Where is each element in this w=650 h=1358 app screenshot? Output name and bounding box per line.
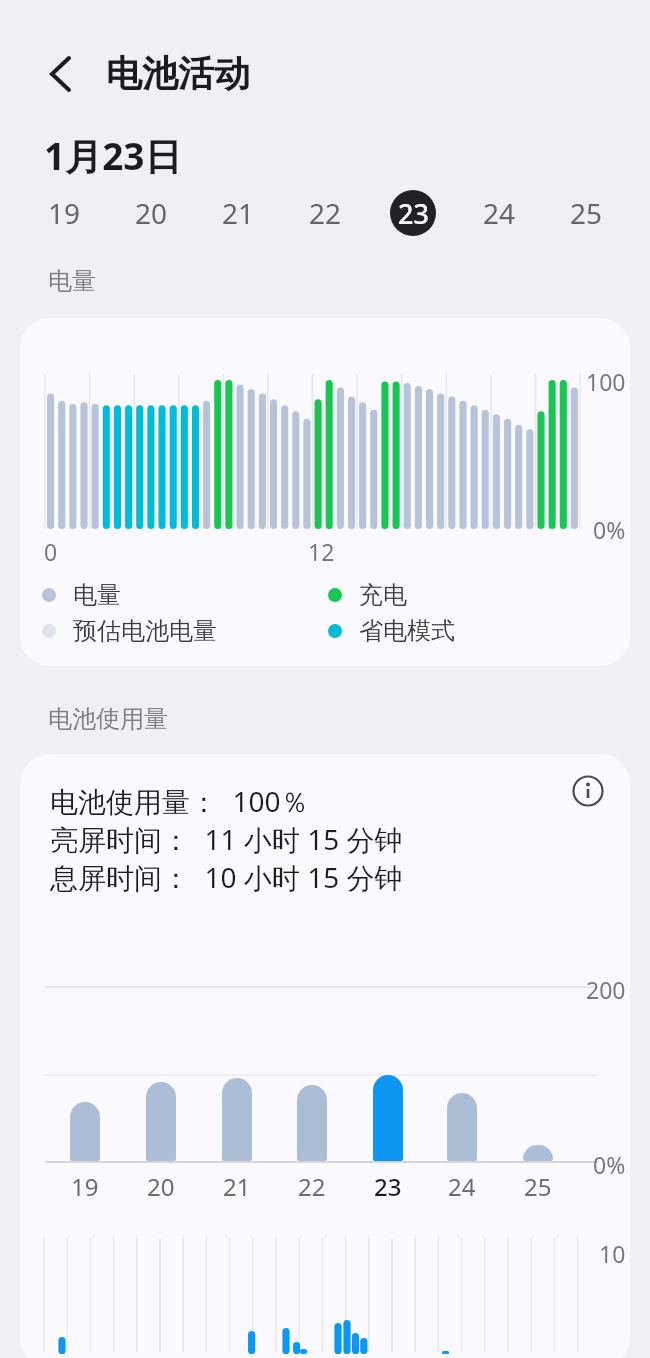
staticText: 0%	[593, 514, 626, 545]
button[interactable]: 21	[195, 188, 282, 238]
staticText: 100	[586, 366, 626, 397]
staticText: 20	[135, 194, 168, 232]
staticText: 电量	[48, 266, 96, 296]
staticText: 息屏时间： 10 小时 15 分钟	[50, 858, 403, 896]
staticText: 21	[222, 194, 255, 232]
staticText: 预估电池电量	[73, 616, 217, 646]
button[interactable]	[571, 774, 605, 808]
staticText: 24	[448, 1170, 476, 1203]
staticText: 23	[398, 195, 429, 232]
button[interactable]: 20	[108, 188, 195, 238]
staticText: 24	[483, 194, 516, 232]
staticText: 电池活动	[106, 51, 250, 96]
staticText: 12	[308, 536, 335, 567]
staticText: 22	[309, 194, 342, 232]
staticText: 充电	[359, 580, 407, 610]
staticText: 200	[586, 974, 626, 1005]
button[interactable]: 19	[20, 188, 108, 238]
button[interactable]: 25	[543, 188, 630, 238]
staticText: 21	[223, 1170, 251, 1203]
button[interactable]: 24	[456, 188, 543, 238]
staticText: 电池使用量	[48, 704, 168, 734]
staticText: 19	[71, 1170, 99, 1203]
staticText: 20	[147, 1170, 175, 1203]
staticText: 省电模式	[359, 616, 455, 646]
staticText: 10	[599, 1238, 626, 1269]
staticText: 1月23日	[44, 130, 182, 181]
staticText: 电池使用量： 100％	[50, 782, 309, 820]
staticText: 22	[298, 1170, 326, 1203]
staticText: 0%	[593, 1149, 626, 1180]
button[interactable]: 23	[369, 188, 456, 238]
button[interactable]: 22	[282, 188, 369, 238]
staticText: 电量	[73, 580, 121, 610]
staticText: 19	[48, 194, 81, 232]
staticText: 0	[44, 536, 58, 567]
staticText: 23	[374, 1170, 402, 1203]
button[interactable]: 电池活动	[42, 51, 250, 96]
staticText: 25	[524, 1170, 552, 1203]
staticText: 25	[570, 194, 603, 232]
staticText: 亮屏时间： 11 小时 15 分钟	[50, 820, 403, 858]
